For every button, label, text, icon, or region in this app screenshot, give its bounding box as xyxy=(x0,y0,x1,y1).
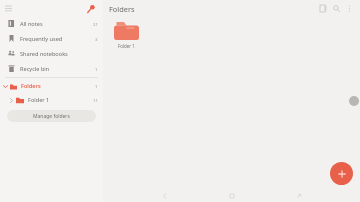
button[interactable]: Recycle bin xyxy=(0,61,103,76)
button[interactable]: Shared notebooks xyxy=(0,46,103,61)
staticText: Folders xyxy=(21,82,41,90)
button[interactable]: Sort xyxy=(317,2,330,15)
button[interactable]: Search xyxy=(330,2,343,15)
button[interactable]: Folder 1 xyxy=(0,93,103,107)
button[interactable]: Recents xyxy=(293,190,304,201)
button[interactable]: Frequently used xyxy=(0,31,103,46)
button[interactable]: Open navigation menu xyxy=(3,3,14,14)
button[interactable]: Home xyxy=(226,190,237,201)
staticText: 11 xyxy=(93,97,98,103)
staticText: All notes xyxy=(20,20,43,28)
staticText: 1 xyxy=(95,83,98,89)
staticText: Frequently used xyxy=(20,35,63,43)
staticText: 3 xyxy=(95,36,98,42)
button[interactable]: Create new folder xyxy=(330,162,353,185)
staticText: Folder 1 xyxy=(28,96,50,104)
button[interactable]: Folder 1 xyxy=(108,18,144,49)
button[interactable]: Folders xyxy=(0,79,103,93)
button[interactable]: All notes xyxy=(0,16,103,31)
staticText: 21 xyxy=(93,21,98,27)
staticText: Folders xyxy=(109,4,135,14)
staticText: 1 xyxy=(95,66,98,72)
button[interactable]: Pin navigation drawer xyxy=(85,2,98,15)
button[interactable]: Resize panes xyxy=(349,96,359,106)
button[interactable]: Back xyxy=(159,190,170,201)
staticText: Folder 1 xyxy=(118,43,135,49)
staticText: Recycle bin xyxy=(20,65,50,73)
button[interactable]: Manage folders xyxy=(7,110,96,122)
button[interactable]: More options xyxy=(343,2,356,15)
staticText: Shared notebooks xyxy=(20,50,68,58)
staticText: Manage folders xyxy=(33,113,70,120)
